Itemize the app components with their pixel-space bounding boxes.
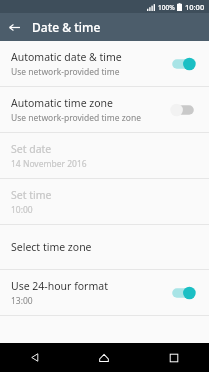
button[interactable]: Home [69, 343, 139, 372]
staticText: Use 24-hour format [11, 279, 108, 293]
staticText: 10:00 [185, 2, 205, 12]
button[interactable]: Select time zone [0, 225, 209, 269]
staticText: Set time [11, 188, 52, 202]
staticText: Automatic date & time [11, 50, 122, 64]
button[interactable]: Recents [139, 343, 209, 372]
staticText: Select time zone [11, 240, 92, 254]
button[interactable]: Toggle off [168, 101, 198, 119]
staticText: Date & time [32, 19, 101, 35]
staticText: Automatic time zone [11, 96, 113, 110]
staticText: 13:00 [11, 295, 33, 307]
button[interactable]: Automatic date & time [0, 41, 209, 86]
button[interactable]: Set time [0, 179, 209, 224]
button[interactable]: Toggle on [168, 55, 198, 73]
staticText: 14 November 2016 [11, 158, 87, 170]
button[interactable]: Toggle on [168, 284, 198, 302]
staticText: Set date [11, 142, 52, 156]
button[interactable]: Back [0, 13, 28, 41]
staticText: Use network-provided time zone [11, 112, 141, 124]
staticText: 100% [158, 3, 175, 12]
button[interactable]: Set date [0, 133, 209, 178]
button[interactable]: Back [0, 343, 69, 372]
button[interactable]: Use 24-hour format [0, 270, 209, 315]
button[interactable]: Automatic time zone [0, 87, 209, 132]
staticText: 10:00 [11, 204, 33, 216]
staticText: Use network-provided time [11, 66, 120, 78]
